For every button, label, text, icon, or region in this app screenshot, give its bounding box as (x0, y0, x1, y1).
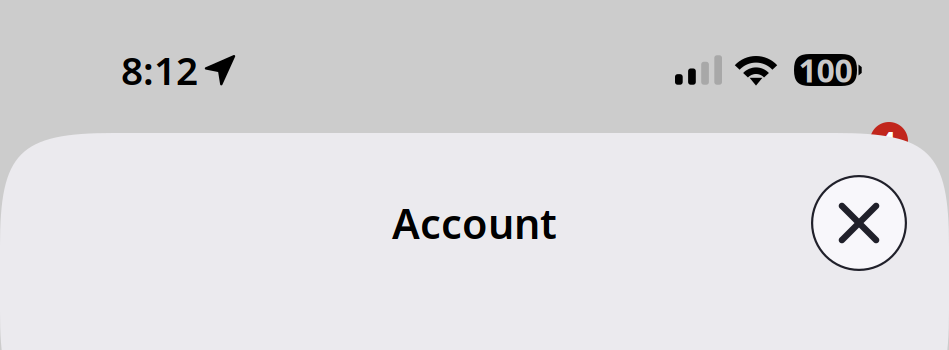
staticText: 100 (798, 49, 852, 91)
staticText: 8:12 (121, 44, 198, 96)
button[interactable]: Close (811, 175, 907, 271)
staticText: 4 (877, 122, 896, 166)
staticText: Account (392, 196, 557, 250)
